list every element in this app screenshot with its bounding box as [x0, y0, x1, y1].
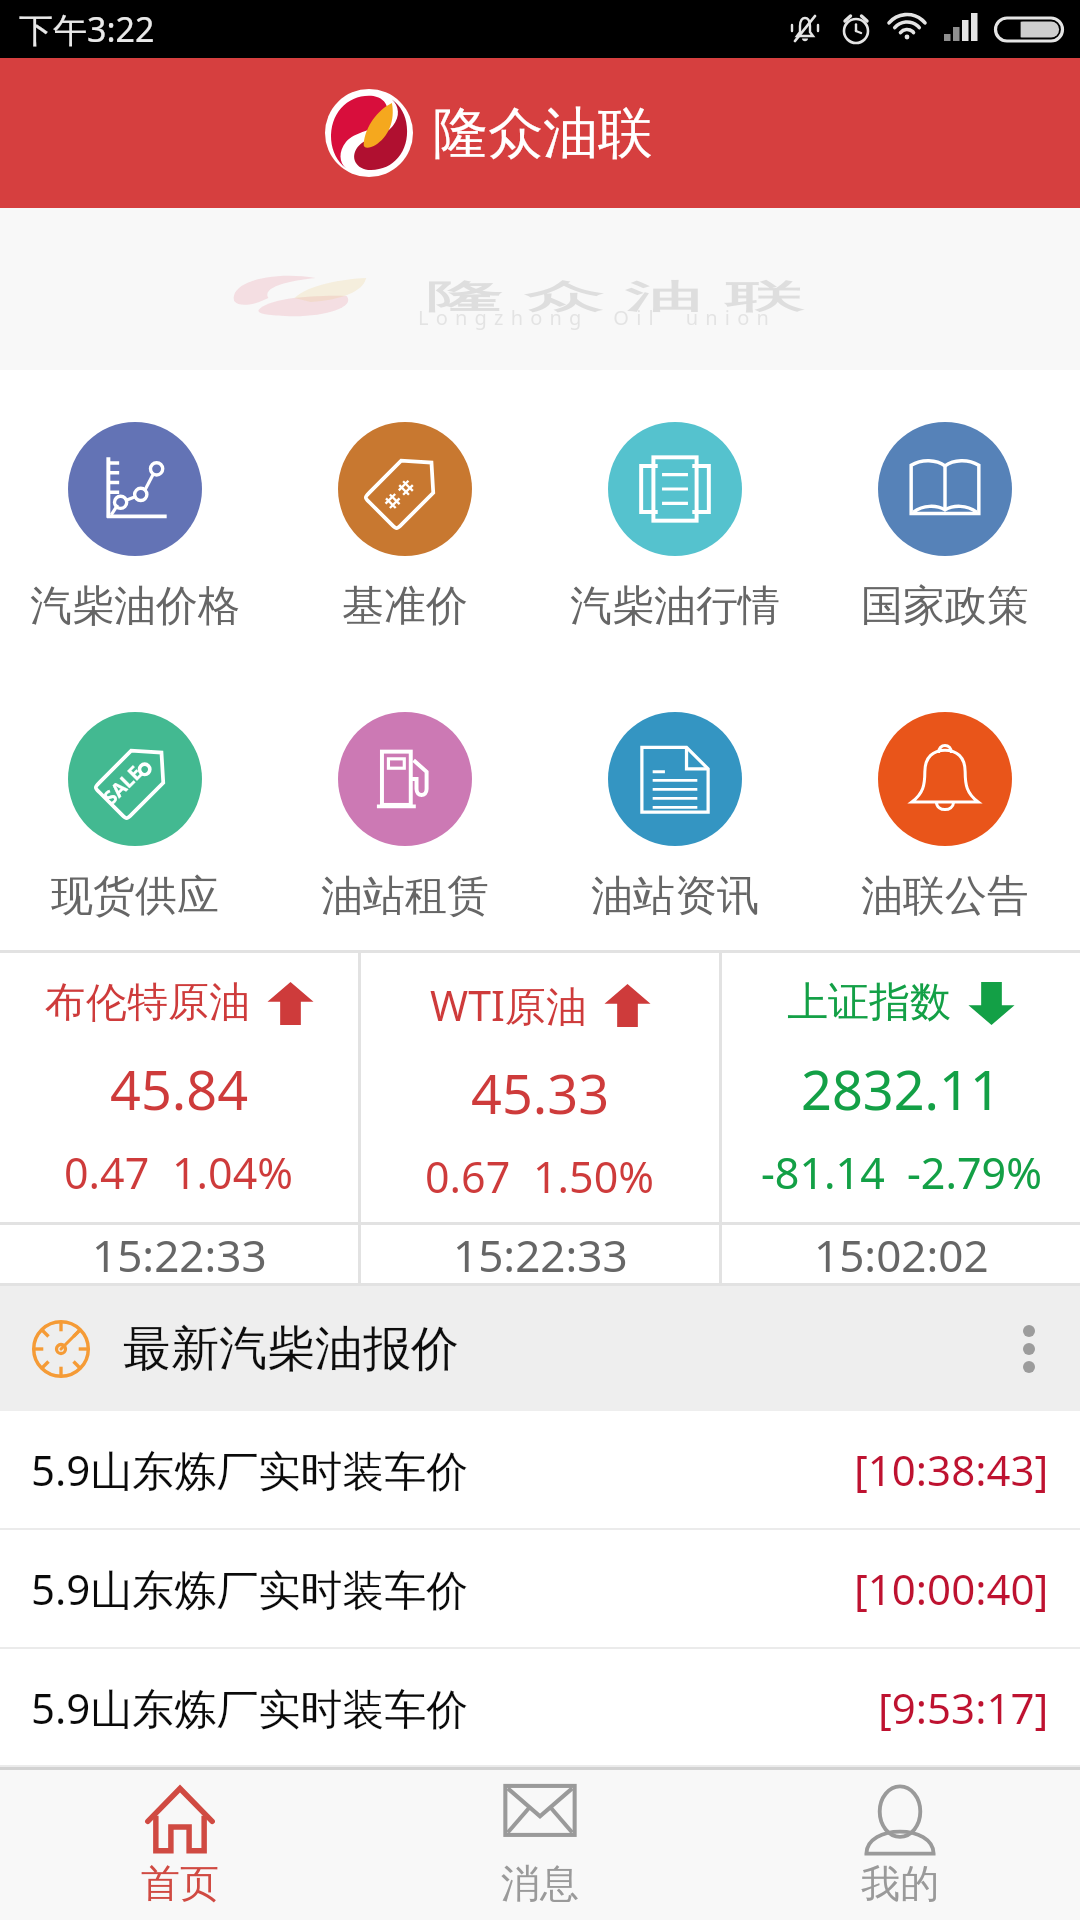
button[interactable]: 汽柴油行情	[540, 370, 810, 660]
staticText: 45.84	[110, 1052, 249, 1126]
staticText: [9:53:17]	[878, 1679, 1049, 1736]
staticText: 15:02:02	[814, 1225, 989, 1283]
staticText: 首页	[141, 1859, 219, 1908]
staticText: 消息	[501, 1859, 579, 1908]
button[interactable]: 汽柴油价格	[0, 370, 270, 660]
staticText: 我的	[861, 1859, 939, 1908]
button[interactable]: 5.9山东炼厂实时装车价	[0, 1649, 1080, 1765]
staticText: 0.47	[64, 1143, 150, 1202]
button[interactable]: SALE	[0, 660, 270, 950]
staticText: [10:38:43]	[854, 1441, 1049, 1498]
staticText: -81.14	[761, 1143, 885, 1202]
staticText: 油站租赁	[321, 870, 489, 923]
staticText: 国家政策	[861, 580, 1029, 633]
button[interactable]: 首页	[0, 1770, 360, 1920]
staticText: 下午3:22	[19, 6, 155, 52]
staticText: 15:22:33	[453, 1225, 628, 1283]
staticText: 隆众油联	[414, 276, 814, 317]
staticText: 汽柴油行情	[570, 580, 780, 633]
staticText: 油站资讯	[591, 870, 759, 923]
staticText: 1.04%	[172, 1143, 294, 1202]
button[interactable]: 油站资讯	[540, 660, 810, 950]
staticText: 隆众油联	[433, 99, 653, 168]
button[interactable]: 最新汽柴油报价	[0, 1286, 1080, 1411]
staticText: 1.50%	[533, 1147, 655, 1206]
button[interactable]: 油站租赁	[270, 660, 540, 950]
staticText: 45.33	[471, 1056, 610, 1130]
button[interactable]: More options	[978, 1295, 1080, 1403]
staticText: 汽柴油价格	[30, 580, 240, 633]
staticText: 最新汽柴油报价	[123, 1319, 459, 1379]
button[interactable]: 布伦特原油	[0, 953, 358, 1222]
staticText: 5.9山东炼厂实时装车价	[31, 1441, 469, 1498]
staticText: 布伦特原油	[45, 977, 250, 1029]
staticText: Longzhong Oil union	[418, 304, 777, 331]
button[interactable]: 油联公告	[810, 660, 1080, 950]
button[interactable]: 我的	[720, 1770, 1080, 1920]
staticText: 5.9山东炼厂实时装车价	[31, 1560, 469, 1617]
staticText: -2.79%	[907, 1143, 1042, 1202]
button[interactable]: 国家政策	[810, 370, 1080, 660]
staticText: [10:00:40]	[854, 1560, 1049, 1617]
button[interactable]: WTI原油	[361, 953, 719, 1222]
staticText: 15:22:33	[92, 1225, 267, 1283]
staticText: 5.9山东炼厂实时装车价	[31, 1679, 469, 1736]
button[interactable]: 消息	[360, 1770, 720, 1920]
staticText: 2832.11	[801, 1052, 1001, 1126]
staticText: 上证指数	[787, 977, 951, 1029]
staticText: SALE	[97, 760, 148, 810]
staticText: 0.67	[425, 1147, 511, 1206]
staticText: WTI原油	[430, 977, 587, 1033]
button[interactable]: 基准价	[270, 370, 540, 660]
staticText: 现货供应	[51, 870, 219, 923]
button[interactable]: 上证指数	[722, 953, 1080, 1222]
staticText: 基准价	[342, 580, 468, 633]
staticText: 油联公告	[861, 870, 1029, 923]
button[interactable]: 5.9山东炼厂实时装车价	[0, 1411, 1080, 1528]
button[interactable]: 5.9山东炼厂实时装车价	[0, 1530, 1080, 1647]
